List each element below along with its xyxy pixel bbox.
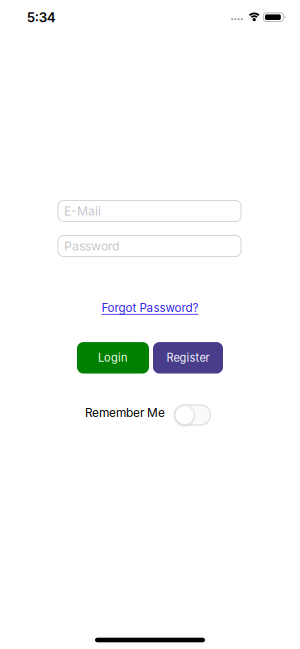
staticText: 5:34 — [27, 9, 56, 25]
button[interactable]: Login — [77, 342, 149, 374]
staticText: Register — [166, 351, 209, 364]
button[interactable]: Password — [58, 235, 241, 256]
button[interactable]: E-Mail — [58, 200, 241, 221]
button[interactable]: Forgot Password? — [101, 301, 198, 315]
staticText: Forgot Password? — [101, 301, 198, 315]
staticText: Login — [98, 351, 128, 364]
button[interactable]: Remember Me — [85, 403, 212, 427]
staticText: Remember Me — [85, 406, 165, 420]
staticText: E-Mail — [64, 204, 101, 218]
staticText: Password — [64, 239, 120, 253]
button[interactable]: Register — [153, 342, 223, 374]
